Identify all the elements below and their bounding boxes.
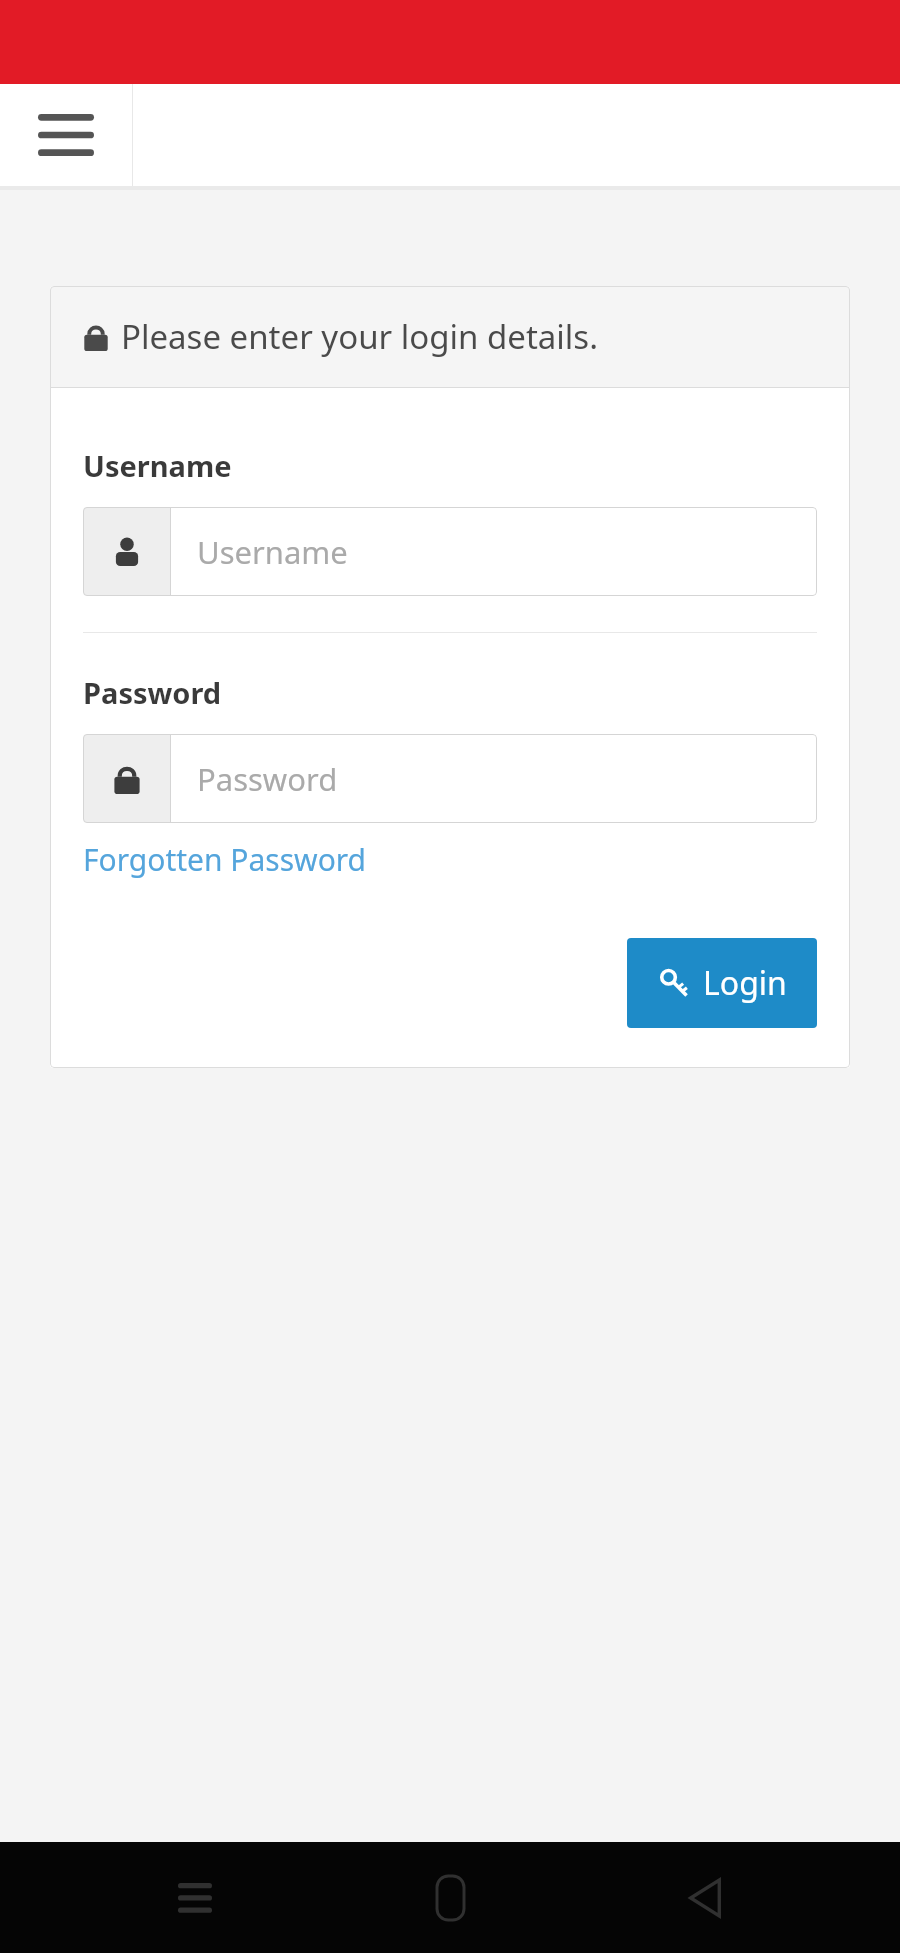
staticText: Please enter your login details.	[121, 314, 599, 359]
staticText: Username	[197, 531, 348, 573]
button[interactable]: Recents	[120, 1842, 270, 1953]
staticText: Login	[703, 961, 787, 1005]
staticText: Username	[83, 446, 232, 485]
button[interactable]: Back	[630, 1842, 780, 1953]
button[interactable]: Home	[375, 1842, 525, 1953]
staticText: Password	[83, 673, 222, 712]
button[interactable]: Forgotten Password	[83, 839, 367, 880]
staticText: Forgotten Password	[83, 839, 367, 880]
staticText: Password	[197, 758, 338, 800]
button[interactable]: Login	[627, 938, 817, 1028]
button[interactable]: Menu	[0, 84, 132, 186]
button[interactable]: Username	[83, 507, 817, 596]
button[interactable]: Password	[83, 734, 817, 823]
